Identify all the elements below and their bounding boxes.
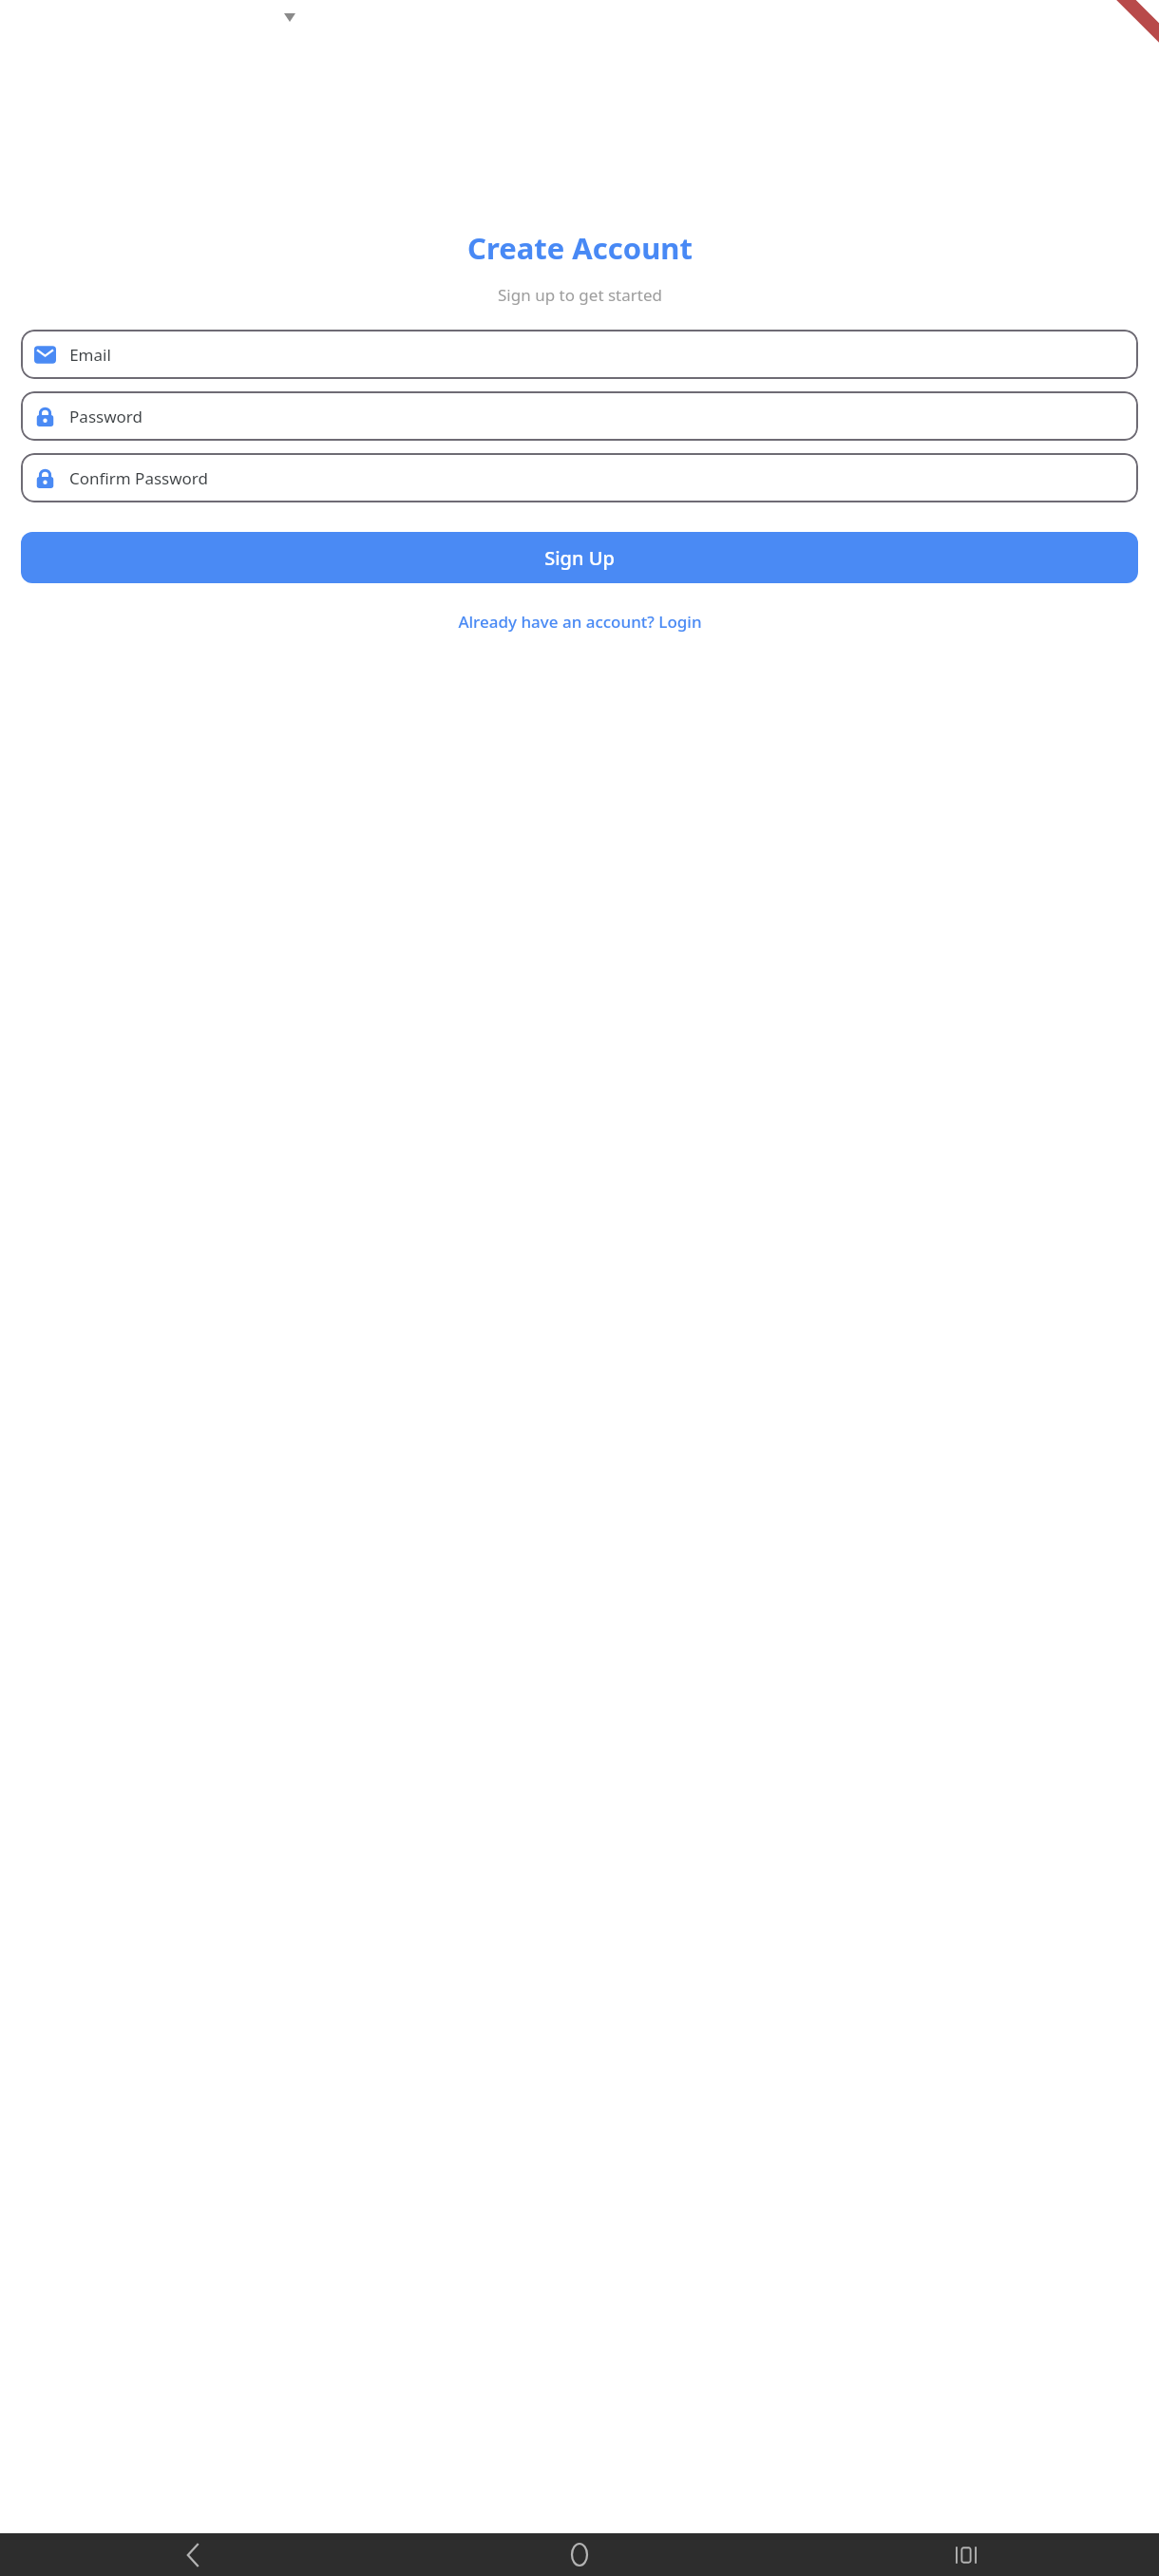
staticText: Create Account	[467, 228, 693, 268]
button[interactable]: Back	[0, 2533, 386, 2576]
staticText: Email	[69, 344, 111, 366]
staticText: Already have an account? Login	[458, 611, 702, 633]
button[interactable]: Password	[21, 391, 1138, 441]
button[interactable]: Sign Up	[21, 532, 1138, 583]
button[interactable]: Home	[386, 2533, 772, 2576]
button[interactable]: Email	[21, 330, 1138, 379]
button[interactable]: Already have an account? Login	[448, 603, 712, 640]
staticText: Password	[69, 406, 142, 427]
staticText: Sign up to get started	[498, 284, 662, 306]
staticText: Confirm Password	[69, 467, 208, 489]
button[interactable]: Recent apps	[772, 2533, 1159, 2576]
button[interactable]: Confirm Password	[21, 453, 1138, 502]
staticText: DEBUG	[1117, 21, 1150, 53]
staticText: Sign Up	[544, 545, 615, 571]
